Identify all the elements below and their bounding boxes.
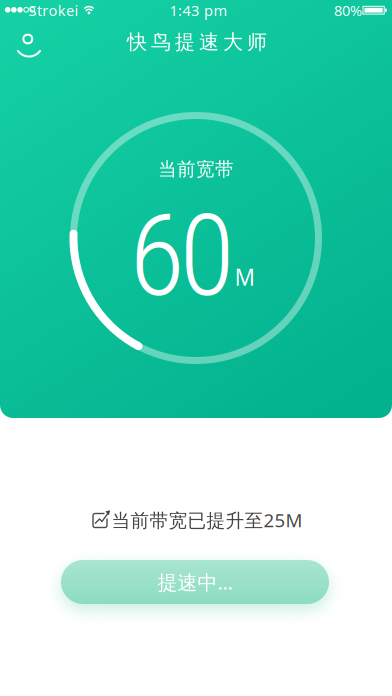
staticText: 1:43 pm bbox=[169, 1, 227, 20]
staticText: 当前宽带 bbox=[158, 158, 234, 181]
staticText: 80% bbox=[334, 1, 362, 20]
staticText: M bbox=[234, 262, 255, 292]
staticText: 当前带宽已提升至25M bbox=[111, 508, 302, 532]
staticText: 60 bbox=[129, 190, 234, 322]
button[interactable]: Profile bbox=[10, 27, 46, 63]
staticText: Strokei bbox=[29, 1, 78, 20]
staticText: 快鸟提速大师 bbox=[127, 30, 267, 54]
staticText: 提速中... bbox=[157, 569, 232, 595]
button[interactable]: 提速中... bbox=[61, 560, 329, 604]
